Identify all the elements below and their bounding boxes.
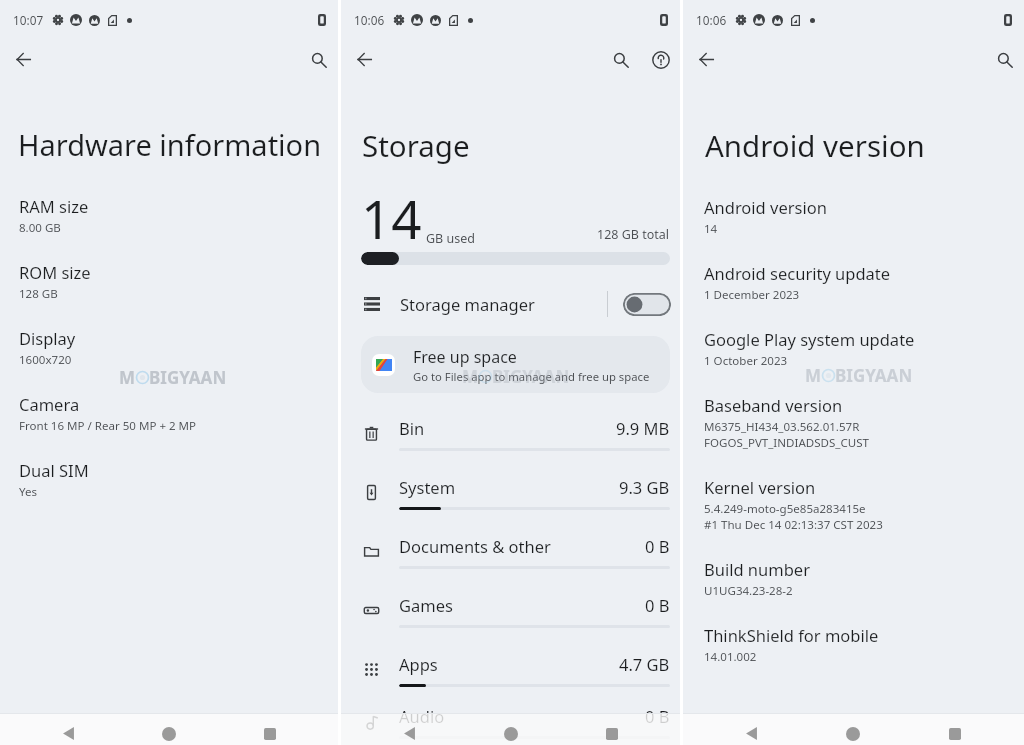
button[interactable]: Google Play system update (683, 328, 1024, 369)
staticText: Kernel version (704, 476, 816, 498)
button[interactable]: Back (359, 718, 460, 745)
staticText: ThinkShield for mobile (704, 624, 879, 646)
button[interactable]: Home (802, 718, 904, 745)
staticText: 10:07 (13, 12, 44, 28)
button[interactable]: Recents (219, 718, 320, 745)
staticText: 9.9 MB (616, 417, 670, 439)
button[interactable]: Search (990, 45, 1019, 74)
staticText: Storage (362, 125, 470, 165)
button[interactable]: Recents (561, 718, 662, 745)
staticText: M (119, 366, 136, 389)
staticText: RAM size (19, 195, 89, 217)
button[interactable]: Audio (341, 699, 680, 745)
staticText: 128 GB (19, 286, 58, 302)
staticText: Audio (399, 705, 445, 727)
button[interactable]: Dual SIM (0, 459, 338, 500)
staticText: Google Play system update (704, 328, 915, 350)
staticText: Games (399, 594, 453, 616)
button[interactable]: Games (341, 581, 680, 640)
staticText: 14 (361, 182, 422, 254)
button[interactable]: Storage manager toggle (623, 293, 671, 316)
staticText: BIGYAAN (492, 365, 570, 388)
staticText: M (462, 365, 479, 388)
button[interactable]: Android version (683, 196, 1024, 237)
button[interactable]: Back (350, 45, 379, 74)
staticText: Android version (704, 196, 827, 218)
staticText: 10:06 (354, 12, 385, 28)
staticText: ROM size (19, 261, 91, 283)
staticText: Storage manager (400, 293, 535, 315)
staticText: U1UG34.23-28-2 (704, 583, 793, 599)
button[interactable]: Documents & other (341, 522, 680, 581)
staticText: GB used (426, 230, 475, 247)
button[interactable]: Home (118, 718, 219, 745)
button[interactable]: Search (304, 45, 333, 74)
button[interactable]: Baseband version (683, 394, 1024, 451)
staticText: 5.4.249-moto-g5e85a283415e (704, 501, 866, 517)
button[interactable]: Bin (341, 404, 680, 463)
staticText: 0 B (645, 535, 670, 557)
button[interactable]: Build number (683, 558, 1024, 599)
staticText: Bin (399, 417, 425, 439)
button[interactable]: Android security update (683, 262, 1024, 303)
staticText: Apps (399, 653, 438, 675)
staticText: 8.00 GB (19, 220, 61, 236)
staticText: 1600x720 (19, 352, 72, 368)
staticText: BIGYAAN (149, 366, 227, 389)
staticText: Android version (705, 125, 925, 165)
staticText: BIGYAAN (835, 364, 913, 387)
button[interactable]: Storage manager (341, 283, 680, 325)
staticText: 1 December 2023 (704, 287, 800, 303)
staticText: Free up space (413, 346, 517, 368)
staticText: Documents & other (399, 535, 551, 557)
button[interactable]: Free up space (361, 336, 670, 393)
button[interactable]: Search (606, 45, 635, 74)
button[interactable]: Home (460, 718, 561, 745)
staticText: Yes (19, 484, 38, 500)
button[interactable]: Back (18, 718, 118, 745)
staticText: Android security update (704, 262, 891, 284)
button[interactable]: Camera (0, 393, 338, 434)
staticText: 1 October 2023 (704, 353, 788, 369)
staticText: 128 GB total (597, 226, 670, 243)
button[interactable]: Help (646, 45, 675, 74)
staticText: 0 B (645, 705, 670, 727)
staticText: Display (19, 327, 76, 349)
staticText: FOGOS_PVT_INDIADSDS_CUST (704, 435, 869, 451)
button[interactable]: System (341, 463, 680, 522)
button[interactable]: Apps (341, 640, 680, 699)
staticText: #1 Thu Dec 14 02:13:37 CST 2023 (704, 517, 883, 533)
staticText: 10:06 (696, 12, 727, 28)
staticText: Hardware information (18, 125, 322, 164)
staticText: System (399, 476, 456, 498)
staticText: M (805, 364, 822, 387)
staticText: Dual SIM (19, 459, 89, 481)
staticText: 0 B (645, 594, 670, 616)
staticText: Baseband version (704, 394, 843, 416)
staticText: 14 (704, 221, 718, 237)
button[interactable]: Back (9, 45, 38, 74)
button[interactable]: ROM size (0, 261, 338, 302)
staticText: 9.3 GB (619, 476, 670, 498)
button[interactable]: Kernel version (683, 476, 1024, 533)
staticText: Go to Files app to manage and free up sp… (413, 369, 650, 384)
staticText: Front 16 MP / Rear 50 MP + 2 MP (19, 418, 197, 434)
staticText: 4.7 GB (619, 653, 670, 675)
button[interactable]: RAM size (0, 195, 338, 236)
button[interactable]: Display (0, 327, 338, 368)
button[interactable]: ThinkShield for mobile (683, 624, 1024, 665)
staticText: M6375_HI434_03.562.01.57R (704, 419, 860, 435)
staticText: Camera (19, 393, 80, 415)
staticText: 14.01.002 (704, 649, 757, 665)
button[interactable]: Recents (904, 718, 1006, 745)
button[interactable]: Back (692, 45, 721, 74)
staticText: Build number (704, 558, 810, 580)
button[interactable]: Back (701, 718, 802, 745)
